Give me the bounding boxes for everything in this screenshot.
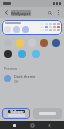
staticText: Wallpaper — [10, 110, 24, 113]
button[interactable] — [40, 39, 48, 47]
button[interactable]: Search — [46, 9, 53, 16]
button[interactable]: Home — [29, 122, 36, 129]
button[interactable] — [53, 29, 56, 31]
button[interactable] — [2, 20, 62, 35]
button[interactable]: Dark theme — [0, 73, 64, 84]
button[interactable] — [57, 26, 60, 28]
button[interactable] — [4, 50, 12, 58]
staticText: Dark theme — [14, 74, 36, 79]
staticText: Wallpaper — [11, 11, 31, 16]
button[interactable] — [53, 23, 56, 25]
button[interactable] — [18, 50, 26, 58]
button[interactable] — [57, 29, 60, 31]
button[interactable] — [33, 108, 62, 119]
staticText: Preview — [4, 66, 18, 71]
staticText: Off — [14, 80, 19, 84]
button[interactable] — [49, 29, 52, 31]
button[interactable] — [53, 26, 56, 28]
button[interactable]: Wallpaper — [11, 10, 31, 16]
button[interactable] — [45, 26, 48, 28]
button[interactable] — [32, 50, 40, 58]
button[interactable] — [52, 39, 60, 47]
button[interactable]: Back — [46, 122, 53, 129]
button[interactable]: Back — [2, 8, 11, 17]
button[interactable]: Recents — [11, 122, 18, 129]
button[interactable] — [57, 23, 60, 25]
button[interactable]: Wallpaper — [2, 108, 30, 119]
button[interactable] — [16, 39, 24, 47]
button[interactable] — [28, 39, 36, 47]
button[interactable]: More options — [55, 9, 62, 16]
